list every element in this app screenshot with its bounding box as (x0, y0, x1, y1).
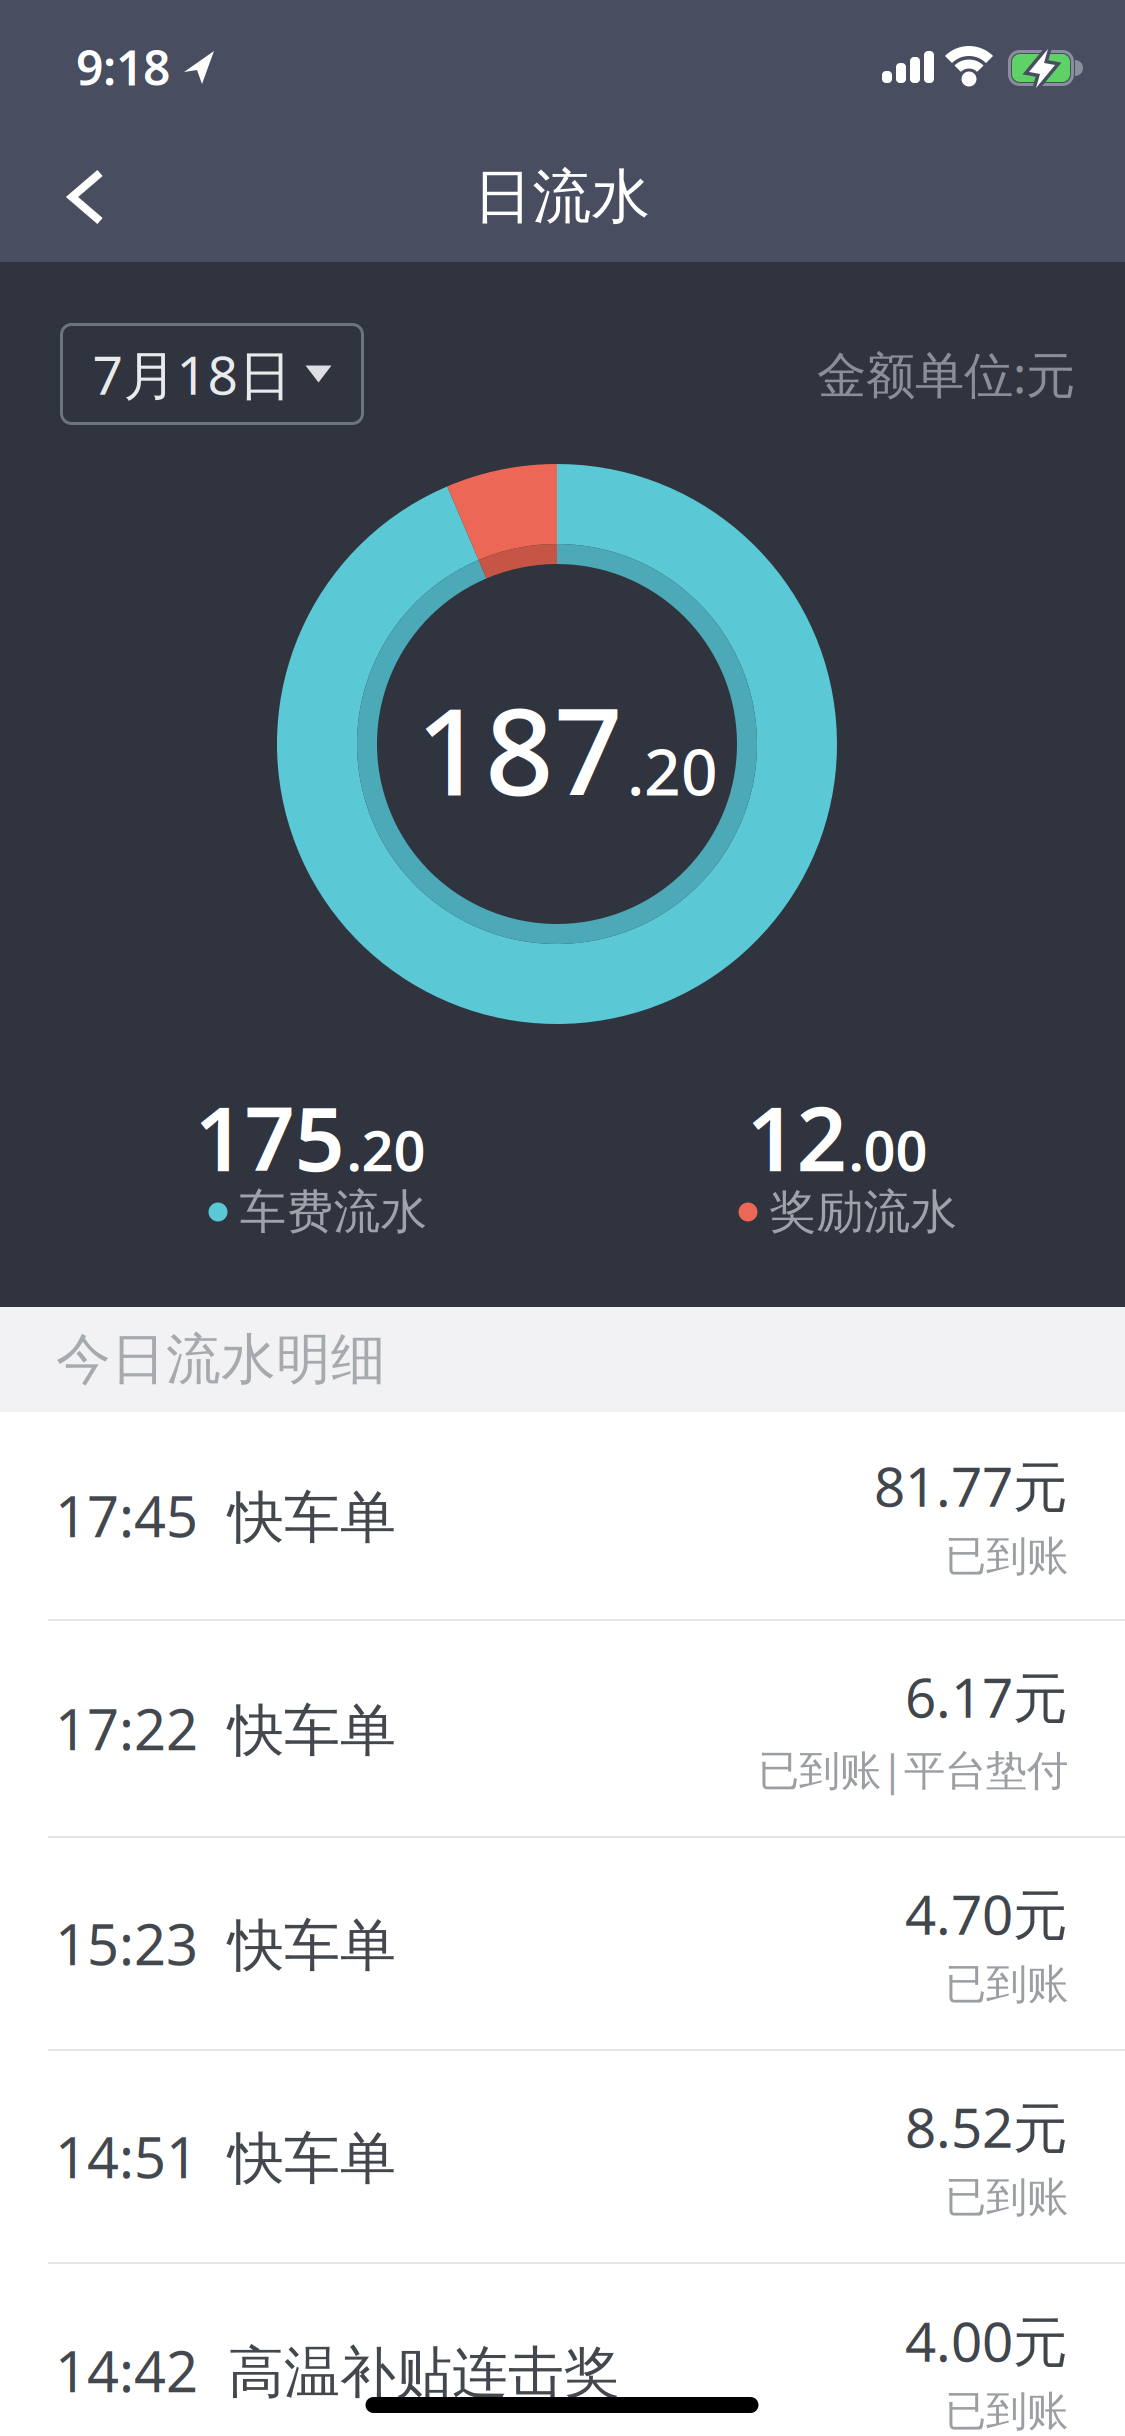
staticText: 7月18日 (92, 339, 291, 409)
staticText: 日流水 (473, 161, 650, 233)
staticText: 已到账 (945, 2172, 1068, 2223)
button[interactable]: 14:51 快车单 (0, 2051, 1125, 2262)
staticText: 4.70元 (905, 1877, 1068, 1950)
staticText: 175 (194, 1079, 344, 1195)
button[interactable]: Back (26, 132, 146, 262)
staticText: 奖励流水 (769, 1183, 957, 1241)
button[interactable]: 14:42 高温补贴连击奖 (0, 2264, 1125, 2436)
staticText: 已到账 (945, 2386, 1068, 2436)
staticText: .00 (848, 1112, 927, 1187)
staticText: 8.52元 (905, 2090, 1068, 2163)
staticText: .20 (346, 1112, 425, 1187)
button[interactable]: 15:23 快车单 (0, 1838, 1125, 2049)
staticText: 15:23 快车单 (55, 1906, 396, 1981)
staticText: 已到账 (945, 1531, 1068, 1582)
staticText: 4.00元 (905, 2304, 1068, 2377)
staticText: 今日流水明细 (56, 1326, 386, 1393)
staticText: .20 (627, 728, 718, 813)
staticText: 12 (746, 1079, 846, 1195)
button[interactable]: 17:22 快车单 (0, 1621, 1125, 1836)
staticText: 已到账|平台垫付 (758, 1742, 1068, 1797)
staticText: 17:22 快车单 (55, 1691, 396, 1766)
staticText: 187 (416, 669, 623, 829)
staticText: 车费流水 (239, 1183, 427, 1241)
staticText: 81.77元 (874, 1449, 1068, 1522)
staticText: 金额单位:元 (817, 341, 1075, 407)
staticText: 9:18 (76, 35, 170, 99)
staticText: 14:51 快车单 (55, 2119, 396, 2194)
button[interactable]: 17:45 快车单 (0, 1412, 1125, 1619)
button[interactable]: 选择日期 (60, 323, 364, 425)
staticText: 14:42 高温补贴连击奖 (55, 2333, 620, 2408)
staticText: 已到账 (945, 1959, 1068, 2010)
staticText: 17:45 快车单 (55, 1478, 396, 1553)
staticText: 6.17元 (905, 1660, 1068, 1733)
